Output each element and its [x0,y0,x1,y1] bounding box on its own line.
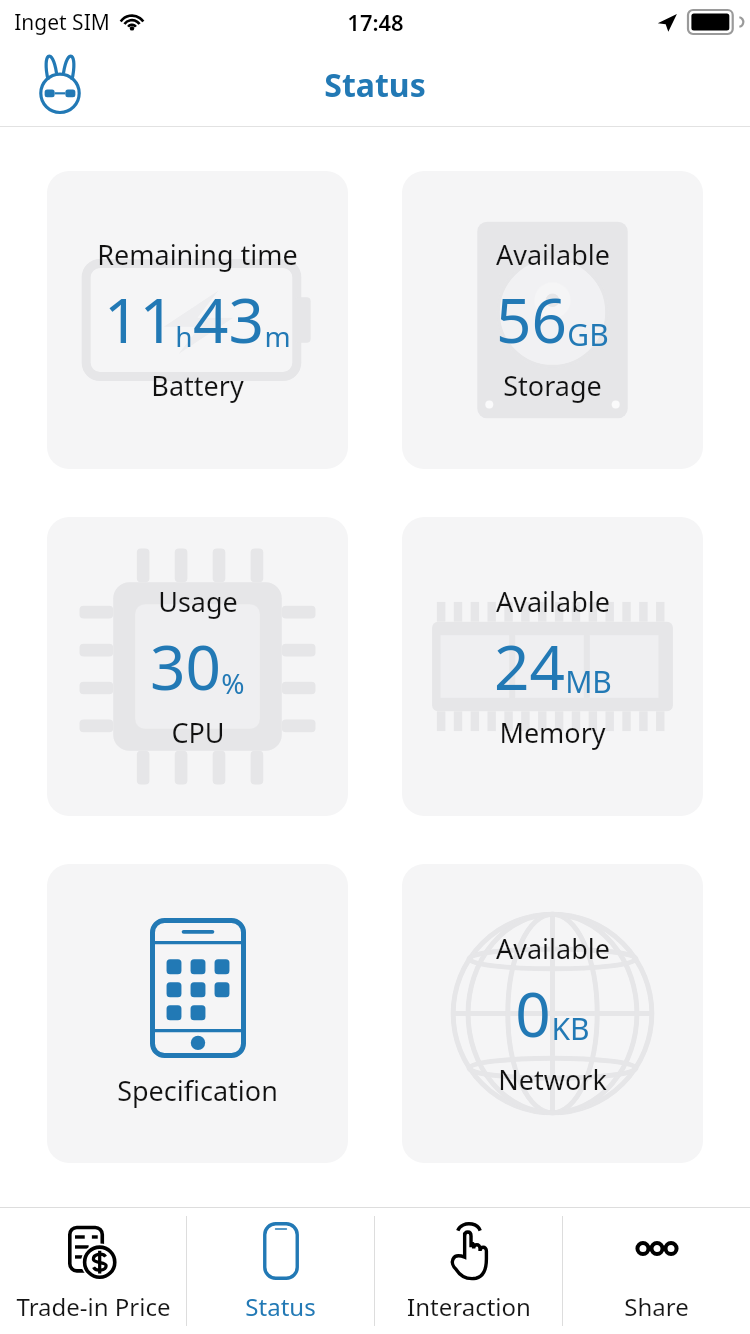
staticText: Specification [117,1072,278,1109]
button[interactable]: Specification [47,864,348,1163]
staticText: KB [551,1008,590,1049]
staticText: GB [567,314,609,355]
staticText: Trade-in Price [16,1290,171,1323]
staticText: Remaining time [97,236,298,273]
staticText: Available [496,930,610,967]
staticText: Available [496,583,610,620]
staticText: MB [565,661,612,702]
staticText: 43 [193,277,264,361]
button[interactable]: Trade-in Price [0,1208,186,1334]
button[interactable]: Interaction [375,1208,562,1334]
staticText: Inget SIM [14,8,110,37]
staticText: m [264,317,291,355]
staticText: 24 [494,624,565,708]
staticText: Share [624,1290,689,1323]
staticText: CPU [171,714,225,751]
staticText: Available [496,236,610,273]
staticText: Network [498,1061,607,1098]
button[interactable]: Usage [47,517,348,816]
button[interactable]: Available [402,517,703,816]
button[interactable]: Available [402,171,703,469]
staticText: Usage [158,583,238,620]
button[interactable]: Status [187,1208,374,1334]
staticText: h [175,317,193,355]
staticText: Battery [151,367,244,404]
staticText: Interaction [407,1290,531,1323]
staticText: % [221,664,245,702]
staticText: 56 [496,277,567,361]
staticText: 11 [104,277,175,361]
staticText: Status [324,63,426,107]
button[interactable]: Remaining time [47,171,348,469]
staticText: 0 [515,971,551,1055]
staticText: Storage [503,367,602,404]
button[interactable]: Share [563,1208,750,1334]
staticText: 17:48 [347,7,404,37]
button[interactable]: Available [402,864,703,1163]
staticText: Memory [499,714,606,751]
staticText: Status [245,1290,316,1323]
button[interactable]: AnTuTu logo [28,53,92,117]
staticText: 30 [150,624,221,708]
